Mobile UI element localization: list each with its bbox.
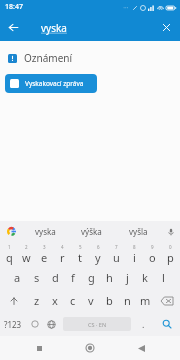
staticText: . <box>142 318 145 330</box>
staticText: 7 <box>115 244 118 250</box>
button[interactable]: Clear search <box>153 14 180 41</box>
staticText: 4 <box>61 244 64 250</box>
button[interactable]: 7 <box>107 242 125 266</box>
staticText: p <box>167 250 174 265</box>
button[interactable]: Google <box>0 221 22 242</box>
staticText: q <box>6 250 13 265</box>
button[interactable]: x <box>46 289 64 312</box>
button[interactable]: j <box>118 266 136 289</box>
button[interactable]: Change language <box>43 312 60 336</box>
button[interactable]: Back <box>129 336 153 360</box>
button[interactable]: . <box>134 312 153 336</box>
button[interactable]: Backspace <box>154 289 180 312</box>
staticText: r <box>60 250 65 265</box>
button[interactable]: 9 <box>143 242 161 266</box>
staticText: w <box>22 250 31 265</box>
button[interactable]: 5 <box>71 242 89 266</box>
staticText: l <box>162 270 165 285</box>
staticText: o <box>149 250 156 265</box>
staticText: 18:47 <box>5 2 23 12</box>
staticText: vyšla <box>129 226 148 237</box>
staticText: ?123 <box>4 319 22 330</box>
button[interactable]: d <box>46 266 64 289</box>
staticText: 3 <box>43 244 46 250</box>
staticText: b <box>106 293 113 308</box>
button[interactable]: m <box>136 289 154 312</box>
button[interactable]: Emoji <box>26 312 43 336</box>
staticText: f <box>71 270 75 285</box>
button[interactable]: 6 <box>89 242 107 266</box>
staticText: u <box>113 250 120 265</box>
staticText: k <box>142 270 148 285</box>
staticText: a <box>14 270 21 285</box>
button[interactable]: Back <box>0 14 27 41</box>
staticText: m <box>140 293 151 308</box>
button[interactable]: výška <box>68 221 115 242</box>
button[interactable]: g <box>82 266 100 289</box>
button[interactable]: v <box>82 289 100 312</box>
button[interactable]: 3 <box>35 242 53 266</box>
button[interactable]: Search <box>153 312 180 336</box>
button[interactable]: n <box>118 289 136 312</box>
button[interactable]: 1 <box>1 242 18 266</box>
button[interactable]: a <box>8 266 27 289</box>
button[interactable]: 4 <box>53 242 71 266</box>
button[interactable]: CS · EN <box>63 317 131 331</box>
button[interactable]: h <box>100 266 118 289</box>
staticText: z <box>34 293 40 308</box>
button[interactable]: l <box>154 266 172 289</box>
button[interactable]: k <box>136 266 154 289</box>
button[interactable]: f <box>64 266 82 289</box>
button[interactable]: Home <box>78 336 102 360</box>
staticText: výška <box>81 226 102 237</box>
staticText: 1 <box>8 244 11 250</box>
button[interactable]: vyšla <box>115 221 162 242</box>
button[interactable]: Shift <box>0 289 27 312</box>
button[interactable]: Oznámení <box>0 48 180 68</box>
button[interactable]: c <box>64 289 82 312</box>
button[interactable]: Vyskakovací zpráva <box>5 74 97 93</box>
button[interactable]: s <box>27 266 46 289</box>
staticText: Vyskakovací zpráva <box>25 79 84 88</box>
staticText: 9 <box>151 244 154 250</box>
button[interactable]: b <box>100 289 118 312</box>
staticText: e <box>41 250 48 265</box>
button[interactable]: vyska <box>27 14 153 41</box>
staticText: 6 <box>97 244 100 250</box>
staticText: g <box>88 270 95 285</box>
staticText: 5 <box>79 244 82 250</box>
staticText: n <box>124 293 131 308</box>
button[interactable]: 0 <box>161 242 179 266</box>
staticText: v <box>88 293 94 308</box>
staticText: t <box>78 250 82 265</box>
staticText: vyska <box>41 21 67 35</box>
button[interactable]: z <box>27 289 46 312</box>
staticText: 2 <box>25 244 28 250</box>
button[interactable]: 8 <box>125 242 143 266</box>
staticText: 0 <box>169 244 172 250</box>
staticText: Oznámení <box>24 51 73 65</box>
button[interactable]: 2 <box>18 242 35 266</box>
button[interactable]: Voice input <box>162 221 180 242</box>
button[interactable]: vyska <box>22 221 68 242</box>
staticText: 8 <box>133 244 136 250</box>
staticText: s <box>34 270 40 285</box>
staticText: x <box>52 293 58 308</box>
staticText: vyska <box>35 226 56 237</box>
staticText: y <box>95 250 101 265</box>
staticText: d <box>52 270 59 285</box>
staticText: i <box>133 250 136 265</box>
button[interactable]: Recents <box>27 336 51 360</box>
button[interactable]: ?123 <box>0 312 26 336</box>
staticText: c <box>70 293 76 308</box>
staticText: j <box>126 270 129 285</box>
staticText: h <box>106 270 113 285</box>
staticText: CS · EN <box>88 321 107 328</box>
